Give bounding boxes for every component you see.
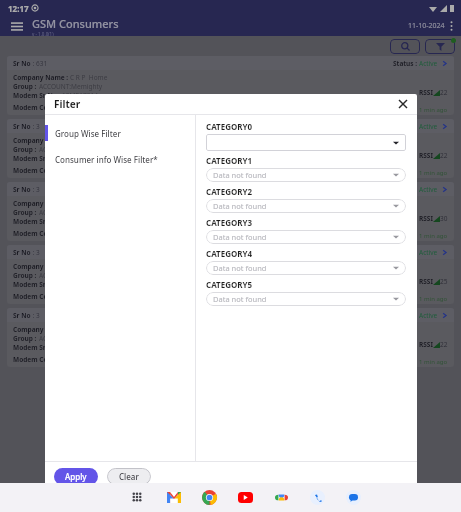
button[interactable]: CATEGORY5 dropdown: [206, 292, 406, 306]
button[interactable]: Sr No: [7, 56, 454, 115]
button[interactable]: Messages: [345, 489, 362, 506]
staticText: 22: [440, 151, 448, 160]
staticText: ACCOUNT: [39, 334, 70, 343]
staticText: Modem Connectivity Status :: [13, 355, 108, 364]
staticText: C R P Home: [70, 73, 108, 82]
button[interactable]: Phone: [309, 489, 326, 506]
button[interactable]: CATEGORY4 dropdown: [206, 261, 406, 275]
staticText: 11-10-2024: [408, 21, 445, 31]
button[interactable]: More options: [444, 19, 458, 33]
button[interactable]: Google Photos: [273, 489, 290, 506]
staticText: Modem Connectivity Status :: [13, 103, 108, 112]
staticText: Active: [419, 311, 438, 320]
staticText: Company Name :: [13, 262, 70, 271]
button[interactable]: YouTube: [237, 489, 254, 506]
staticText: CATEGORY3: [206, 217, 253, 228]
button[interactable]: Clear: [107, 468, 151, 485]
button[interactable]: Consumer info Wise Filter*: [45, 149, 195, 169]
staticText: 25: [440, 277, 448, 286]
staticText: ACCOUNT: [39, 145, 70, 154]
staticText: Data not found: [213, 201, 267, 211]
button[interactable]: CATEGORY2 dropdown: [206, 199, 406, 213]
staticText: Sr No: [13, 122, 31, 131]
button[interactable]: Sr No: [7, 119, 454, 178]
staticText: Company Name :: [13, 136, 70, 145]
staticText: RSSI: [419, 340, 433, 349]
staticText: : 3: [31, 185, 40, 194]
staticText: Sr No: [13, 311, 31, 320]
staticText: Company Name :: [13, 199, 70, 208]
staticText: Status :: [393, 59, 419, 68]
staticText: CATEGORY1: [206, 155, 253, 166]
staticText: Modem Connectivity Status :: [13, 292, 108, 301]
staticText: 1 min ago: [419, 169, 448, 177]
staticText: 1 min ago: [419, 358, 448, 366]
staticText: Status :: [393, 311, 419, 320]
staticText: Active: [419, 122, 438, 131]
staticText: ACCOUNT: [39, 271, 70, 280]
button[interactable]: Group Wise Filter: [45, 123, 195, 143]
staticText: ACCOUNT:Memighty: [39, 82, 103, 91]
staticText: 30: [440, 214, 448, 223]
staticText: Data not found: [213, 232, 267, 242]
button[interactable]: Gmail: [165, 489, 182, 506]
staticText: Data not found: [213, 170, 267, 180]
staticText: 13MP17314: [62, 91, 98, 100]
staticText: Sr No: [13, 185, 31, 194]
staticText: RSSI: [419, 88, 433, 97]
button[interactable]: CATEGORY3 dropdown: [206, 230, 406, 244]
staticText: Group :: [13, 208, 39, 217]
button[interactable]: CATEGORY1 dropdown: [206, 168, 406, 182]
staticText: 1 min ago: [419, 106, 448, 114]
staticText: Active: [419, 185, 438, 194]
button[interactable]: Filter: [425, 39, 455, 54]
staticText: Sr No: [13, 59, 31, 68]
staticText: Status :: [393, 122, 419, 131]
button[interactable]: Apply: [54, 468, 98, 485]
staticText: Group :: [13, 82, 39, 91]
staticText: Modem Connectivity Status :: [13, 166, 108, 175]
staticText: GSM Consumers: [32, 16, 119, 31]
staticText: Modem Sr No :: [13, 154, 62, 163]
staticText: 13MP1731: [62, 154, 95, 163]
button[interactable]: Chrome: [201, 489, 218, 506]
staticText: Company: [70, 136, 100, 145]
staticText: Modem Sr No :: [13, 91, 62, 100]
staticText: Modem Sr No :: [13, 217, 62, 226]
staticText: 1 min ago: [419, 295, 448, 303]
staticText: Group :: [13, 334, 39, 343]
button[interactable]: Close filter dialog: [395, 96, 411, 112]
staticText: Data not found: [213, 263, 267, 273]
staticText: Group :: [13, 271, 39, 280]
staticText: Company Name :: [13, 73, 70, 82]
button[interactable]: Sr No: [7, 182, 454, 241]
button[interactable]: Sr No: [7, 308, 454, 367]
staticText: 22: [440, 88, 448, 97]
button[interactable]: CATEGORY0 dropdown: [206, 134, 406, 151]
staticText: Group Wise Filter: [55, 128, 121, 139]
staticText: : 3: [31, 311, 40, 320]
staticText: Status :: [393, 185, 419, 194]
staticText: : 3: [31, 122, 40, 131]
button[interactable]: Sr No: [7, 245, 454, 304]
staticText: Status :: [393, 248, 419, 257]
button[interactable]: Open navigation menu: [8, 17, 26, 35]
staticText: CATEGORY0: [206, 121, 253, 132]
staticText: Filter: [54, 97, 81, 111]
button[interactable]: Search: [390, 39, 420, 54]
staticText: : 631: [31, 59, 48, 68]
staticText: 22: [440, 340, 448, 349]
staticText: ACCOUNT: [39, 208, 70, 217]
staticText: Active: [419, 248, 438, 257]
button[interactable]: All apps: [129, 489, 146, 506]
staticText: Group :: [13, 145, 39, 154]
staticText: Modem Sr No :: [13, 343, 62, 352]
